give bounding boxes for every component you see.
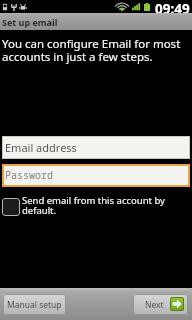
staticText: Send email from this account by default. bbox=[22, 194, 174, 217]
staticText: 09:49 bbox=[155, 0, 190, 13]
button[interactable]: Manual setup bbox=[3, 294, 66, 315]
button[interactable]: Email address bbox=[2, 136, 190, 159]
button[interactable]: Next bbox=[133, 294, 188, 315]
staticText: Password bbox=[5, 168, 53, 182]
staticText: You can configure Email for most account… bbox=[2, 36, 191, 65]
staticText: Email address bbox=[5, 140, 77, 155]
button[interactable]: Password bbox=[2, 164, 190, 187]
button[interactable]: Send email from this account by default. bbox=[0, 198, 192, 221]
staticText: Next bbox=[145, 299, 164, 311]
staticText: Set up email bbox=[2, 16, 58, 28]
staticText: Manual setup bbox=[7, 299, 62, 311]
